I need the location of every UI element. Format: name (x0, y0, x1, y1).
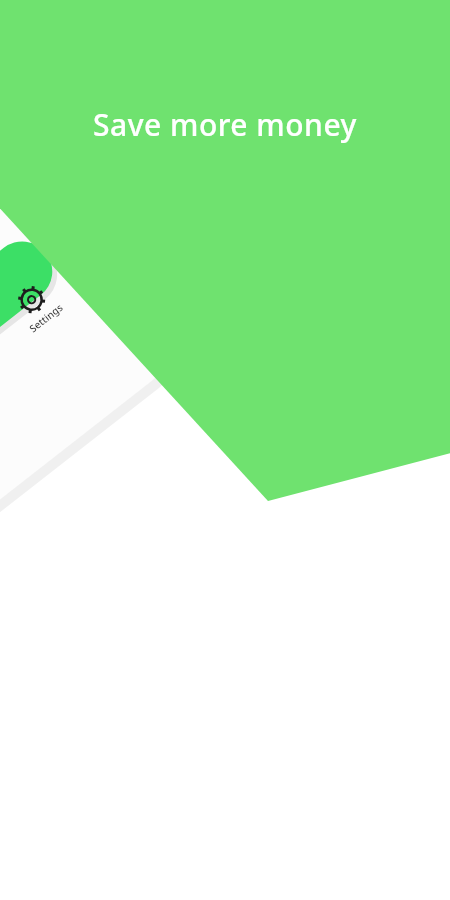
button[interactable]: Save more money onboarding screen (0, 0, 450, 900)
